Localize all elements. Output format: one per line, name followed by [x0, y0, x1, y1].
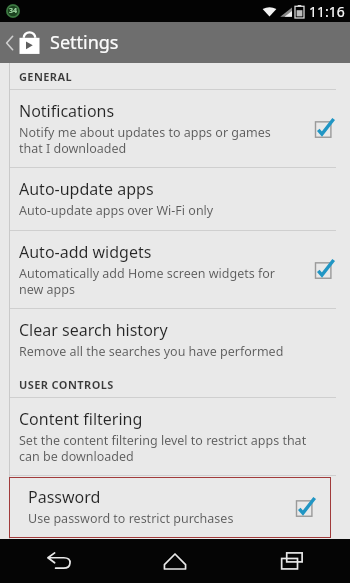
- staticText: 11:16: [309, 2, 345, 21]
- button[interactable]: Notifications: [0, 91, 350, 167]
- staticText: Automatically add Home screen widgets fo…: [19, 265, 275, 297]
- button[interactable]: Auto-update apps: [0, 169, 350, 230]
- staticText: USER CONTROLS: [19, 377, 114, 392]
- staticText: Notify me about updates to apps or games…: [19, 124, 271, 156]
- button[interactable]: Password: [9, 477, 331, 538]
- button[interactable]: Back: [0, 539, 116, 583]
- staticText: Clear search history: [19, 319, 168, 341]
- staticText: Settings: [50, 30, 119, 55]
- staticText: Remove all the searches you have perform…: [19, 343, 284, 360]
- staticText: Set the content filtering level to restr…: [19, 432, 307, 464]
- button[interactable]: Content filtering: [0, 399, 350, 475]
- button[interactable]: Auto-add widgets: [0, 232, 350, 308]
- staticText: GENERAL: [19, 69, 73, 84]
- button[interactable]: Recent apps: [233, 539, 350, 583]
- button[interactable]: Navigate up: [0, 22, 193, 63]
- staticText: 34: [6, 6, 20, 16]
- button[interactable]: Clear search history: [0, 310, 350, 371]
- staticText: Auto-update apps over Wi-Fi only: [19, 202, 214, 219]
- staticText: Auto-add widgets: [19, 241, 152, 263]
- button[interactable]: Home: [116, 539, 233, 583]
- staticText: Auto-update apps: [19, 178, 154, 200]
- staticText: Password: [28, 486, 101, 508]
- staticText: Notifications: [19, 100, 115, 122]
- staticText: Content filtering: [19, 408, 143, 430]
- staticText: Use password to restrict purchases: [28, 510, 234, 527]
